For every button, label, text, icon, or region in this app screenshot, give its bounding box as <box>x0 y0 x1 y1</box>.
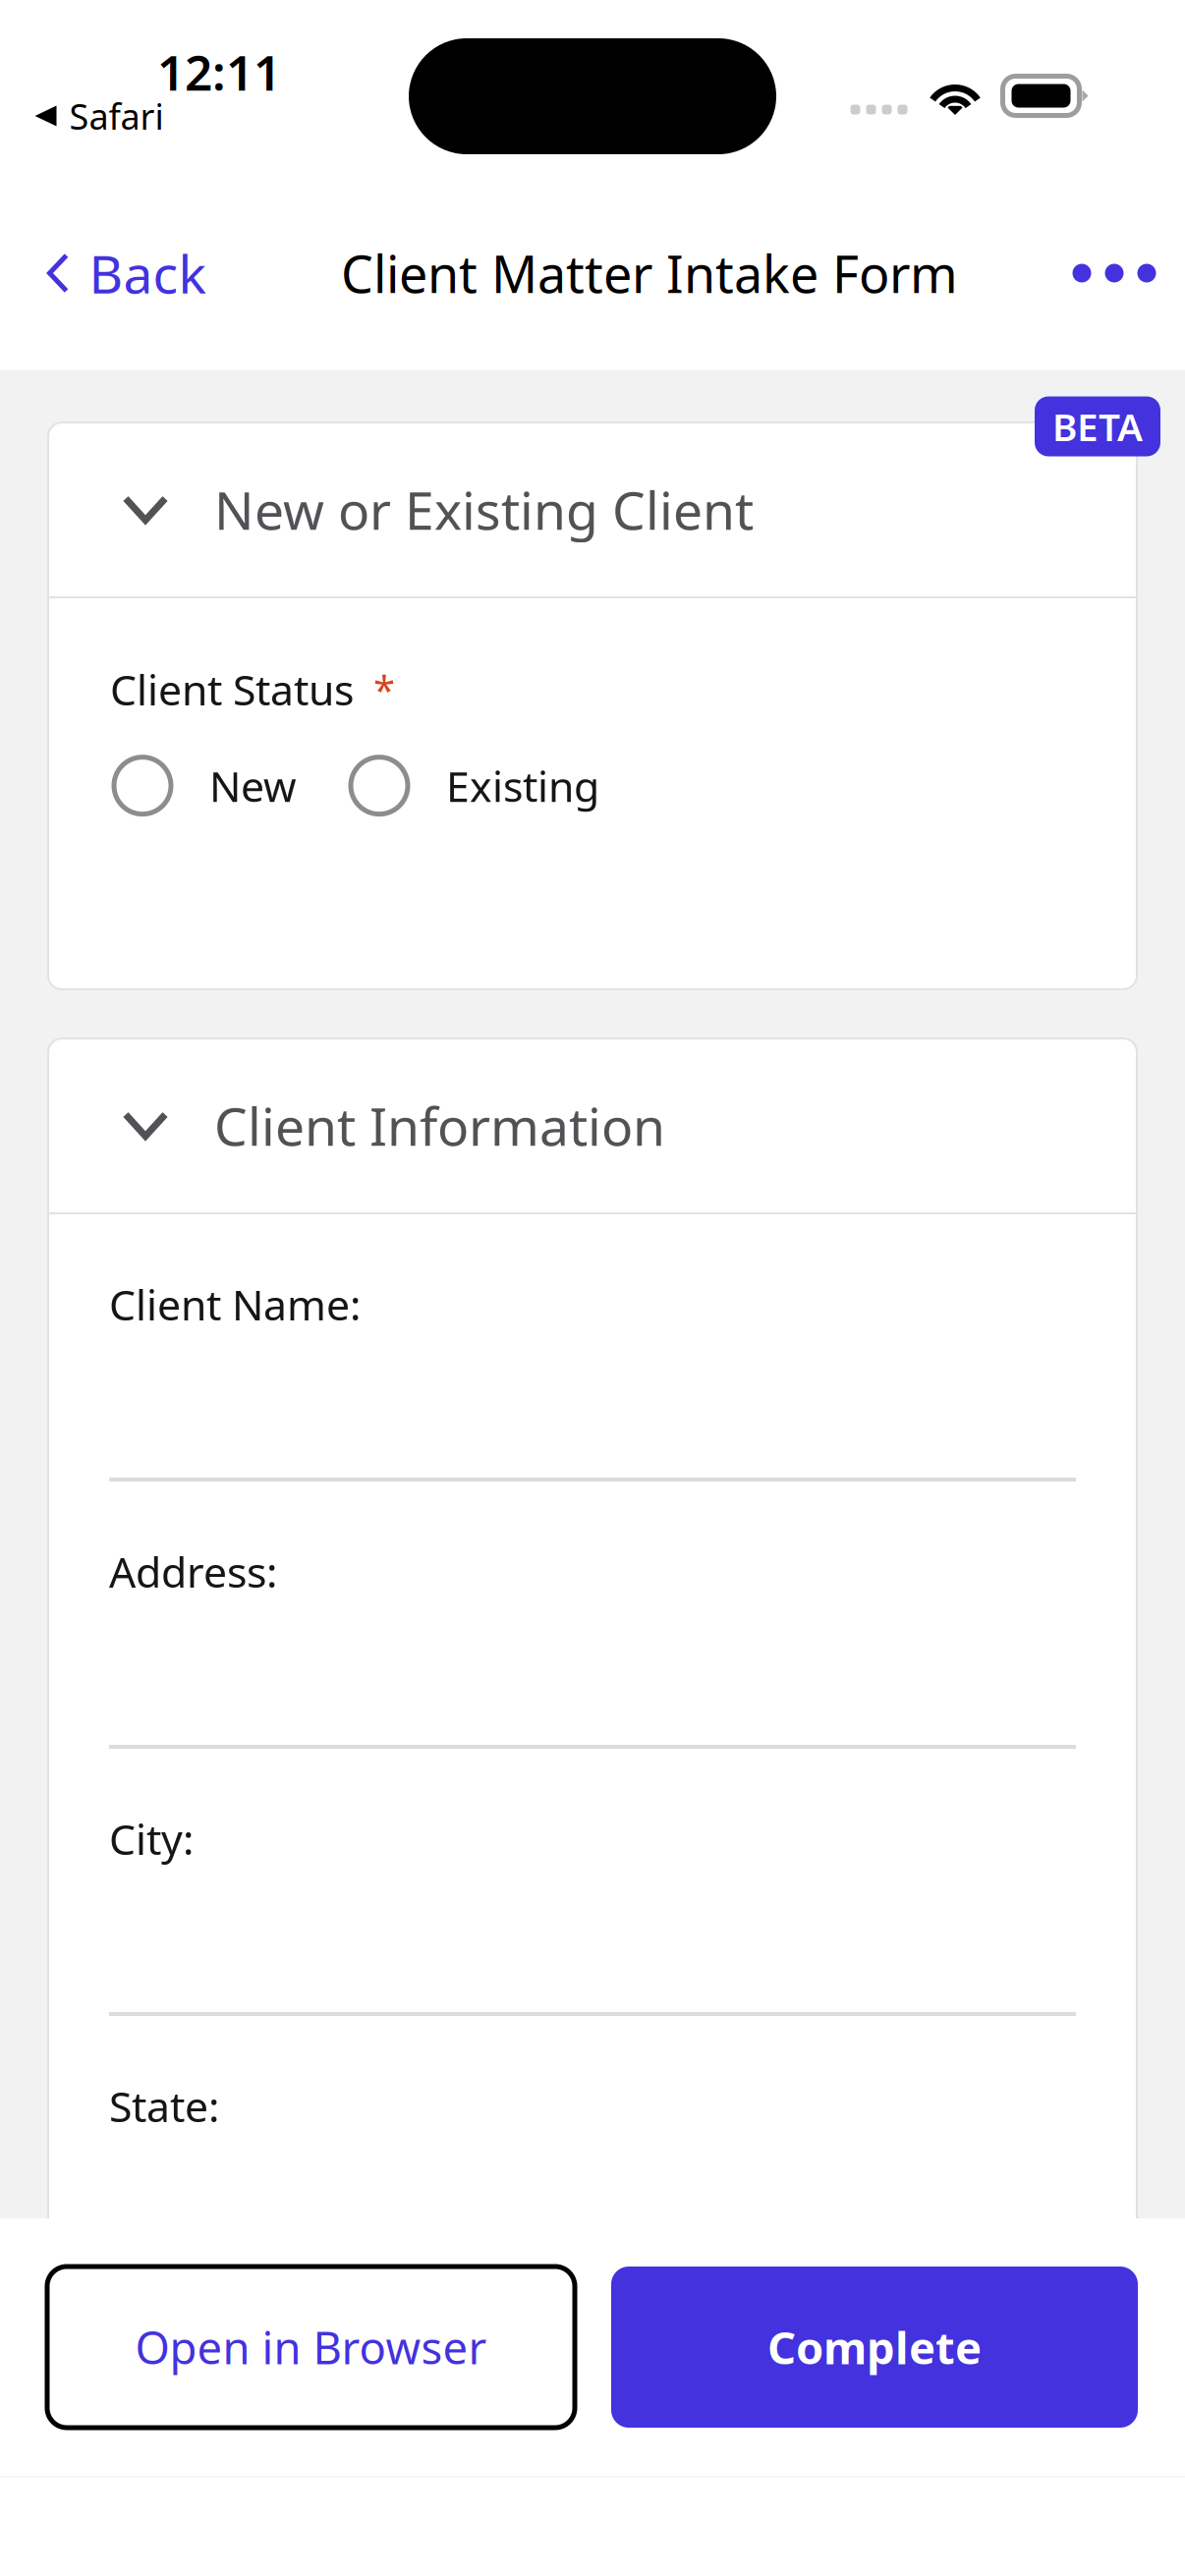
staticText: Complete <box>767 2318 982 2377</box>
staticText: Client Matter Intake Form <box>341 239 958 307</box>
staticText: Open in Browser <box>135 2318 487 2377</box>
button[interactable]: Open in Browser <box>47 2267 575 2428</box>
staticText: Safari <box>69 92 164 139</box>
staticText: Client Name: <box>109 1276 361 1332</box>
button[interactable]: New or Existing Client <box>48 422 1137 596</box>
staticText: * <box>373 663 395 715</box>
staticText: Back <box>89 238 206 308</box>
staticText: New <box>209 758 297 813</box>
staticText: 12:11 <box>157 39 281 104</box>
staticText: New or Existing Client <box>214 475 754 544</box>
button[interactable]: Existing <box>351 757 599 814</box>
staticText: State: <box>109 2078 219 2134</box>
button[interactable]: Safari <box>23 83 175 149</box>
button[interactable]: More options <box>1053 244 1176 302</box>
button[interactable]: Back <box>34 223 222 324</box>
staticText: Client Status <box>110 661 354 717</box>
button[interactable]: New <box>114 757 297 814</box>
staticText: Existing <box>446 758 599 813</box>
staticText: BETA <box>1052 401 1143 452</box>
staticText: Address: <box>109 1543 277 1599</box>
button[interactable]: Client Information <box>48 1038 1137 1212</box>
button[interactable]: Complete <box>611 2267 1138 2428</box>
staticText: Client Information <box>214 1091 665 1160</box>
staticText: City: <box>109 1811 194 1866</box>
